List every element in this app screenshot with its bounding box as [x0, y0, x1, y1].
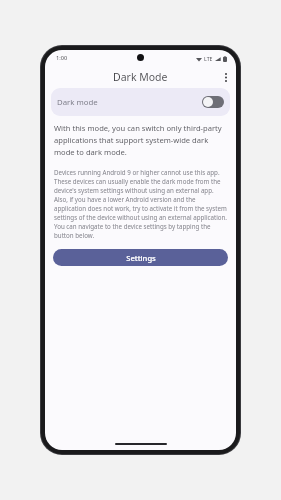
staticText: Settings: [126, 253, 156, 263]
staticText: With this mode, you can switch only thir…: [54, 123, 227, 157]
staticText: Dark Mode: [113, 70, 168, 84]
staticText: LTE: [204, 55, 213, 62]
staticText: Devices running Android 9 or higher cann…: [54, 168, 227, 240]
staticText: Dark mode: [57, 97, 98, 108]
staticText: 1:00: [56, 54, 68, 62]
button[interactable]: Dark mode: [51, 88, 230, 116]
button[interactable]: Settings: [53, 249, 228, 266]
button[interactable]: More options: [216, 67, 236, 87]
